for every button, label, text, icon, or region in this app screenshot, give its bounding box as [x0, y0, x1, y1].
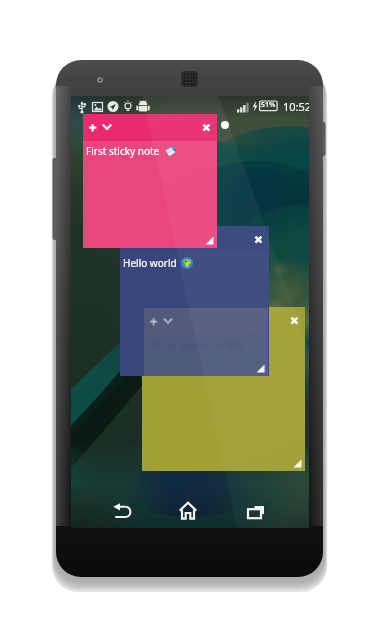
staticText: First sticky note — [86, 144, 160, 158]
staticText: This is awesome day — [147, 338, 244, 352]
button[interactable]: First sticky note — [83, 114, 217, 248]
staticText: Hello world — [123, 256, 177, 270]
staticText: 10:52 — [283, 99, 309, 114]
staticText: 51% — [261, 100, 276, 110]
button[interactable]: Hello world — [120, 226, 269, 376]
button[interactable] — [142, 307, 305, 471]
button[interactable]: This is awesome day — [144, 308, 268, 376]
